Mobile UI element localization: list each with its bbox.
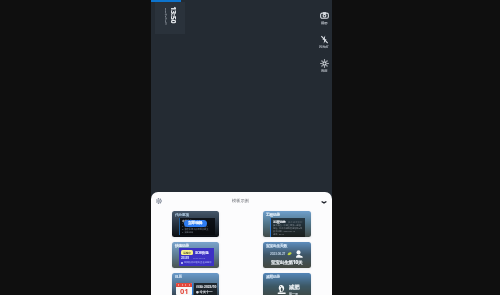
staticText: 宝宝出生第10天 — [271, 259, 303, 265]
staticText: 开工日期: 2023-05-12 — [273, 230, 295, 233]
button[interactable]: 快递记录 — [172, 242, 219, 268]
staticText: 京东快递 — [195, 251, 209, 255]
staticText: 2. 评审会议 14:00 会议室A — [182, 225, 208, 228]
staticText: 立即编辑 — [188, 221, 203, 226]
button[interactable]: 截图 — [313, 11, 335, 25]
staticText: 今日待办 — [182, 219, 193, 222]
staticText: 减肥 — [289, 284, 300, 291]
button[interactable]: 宝宝出生天数 — [263, 242, 311, 268]
staticText: 宝宝出生天数 — [266, 244, 287, 248]
staticText: 截图 — [321, 21, 328, 25]
button[interactable]: 亮度 — [313, 59, 335, 73]
button[interactable]: 代办事项 — [172, 211, 219, 237]
button[interactable]: 闪光灯 — [313, 35, 335, 49]
button[interactable]: Template settings — [156, 198, 162, 204]
staticText: 13:50 — [170, 6, 177, 23]
staticText: 3. 整理本周工作周报并提交 — [182, 228, 209, 231]
staticText: 工程记录 — [266, 213, 280, 217]
staticText: 2023-08-28 — [193, 257, 205, 260]
staticText: 地址: 北京市朝阳区建国路8号 — [273, 227, 303, 230]
staticText: 进度: 65 % — [273, 233, 284, 236]
staticText: 运输中 — [183, 251, 192, 255]
button[interactable]: 减肥记录 — [263, 273, 311, 295]
button[interactable]: Collapse — [320, 198, 328, 206]
staticText: ● 今天十一 — [196, 290, 213, 294]
staticText: 施工单位: 中建三局第一建设 — [273, 224, 301, 227]
staticText: 闪光灯 — [319, 45, 329, 49]
staticText: 您的快件已发出正在运输中 — [184, 261, 212, 264]
staticText: 2023.06.27 — [270, 252, 286, 256]
button[interactable]: 日历 — [172, 273, 219, 295]
staticText: 01 — [180, 286, 189, 295]
staticText: 快递记录 — [175, 244, 189, 248]
staticText: 日历 — [175, 275, 182, 279]
staticText: 4. 采购清单 — [182, 231, 194, 234]
staticText: 第一天 — [289, 292, 298, 295]
staticText: 模板示例 — [232, 198, 249, 203]
staticText: 施工进度跟踪 — [288, 221, 303, 224]
staticText: 亮度 — [321, 69, 328, 73]
staticText: 日期: 2023/10 — [196, 285, 217, 289]
button[interactable]: 工程记录 — [263, 211, 311, 237]
staticText: 代办事项 — [175, 213, 189, 217]
staticText: 23.5¥ — [181, 256, 190, 260]
staticText: 1. 完成产品原型设计稿 — [182, 222, 205, 225]
staticText: 减肥记录 — [266, 275, 280, 279]
staticText: 2023年8月28日 — [165, 8, 168, 25]
staticText: 工程记录 — [273, 220, 286, 224]
